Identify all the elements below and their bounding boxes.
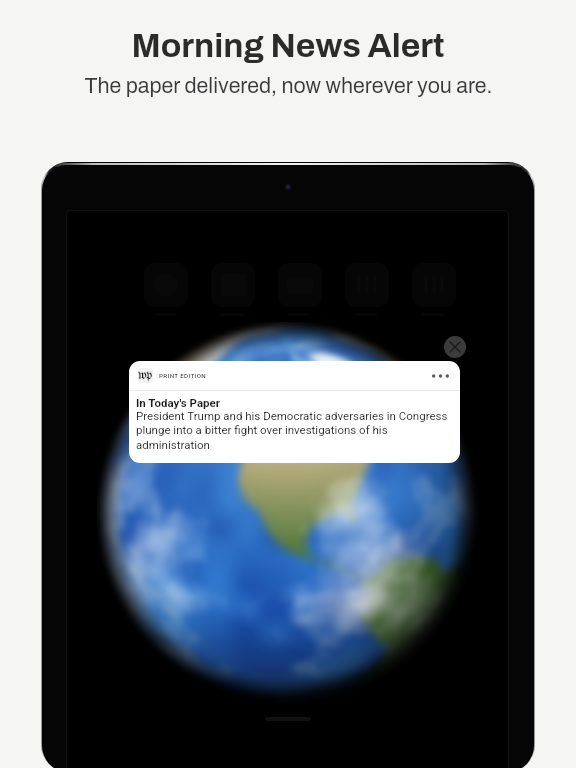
staticText: President Trump and his Democratic adver…	[136, 409, 452, 452]
button[interactable]: Dismiss notification	[444, 336, 466, 358]
other: More options	[432, 369, 449, 383]
staticText: Morning News Alert	[131, 27, 445, 64]
staticText: wp	[138, 369, 153, 382]
staticText: In Today's Paper	[136, 396, 220, 409]
staticText: The paper delivered, now wherever you ar…	[84, 74, 493, 97]
button[interactable]: wp	[129, 361, 460, 463]
staticText: PRINT EDITION	[159, 372, 206, 379]
